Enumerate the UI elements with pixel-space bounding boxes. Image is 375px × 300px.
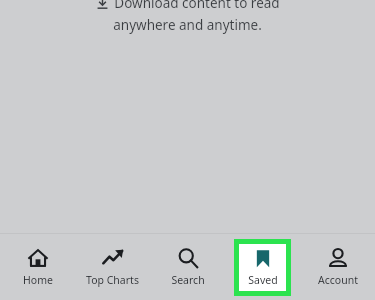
staticText: Account (318, 273, 358, 287)
staticText: Download content to read (114, 0, 280, 12)
staticText: Saved (248, 273, 278, 287)
staticText: anywhere and anytime. (113, 16, 262, 34)
other: Download (96, 0, 109, 10)
button[interactable]: Saved (239, 244, 286, 291)
staticText: Search (171, 273, 205, 287)
button[interactable]: Top Charts (75, 234, 150, 300)
staticText: Home (23, 273, 53, 287)
button[interactable]: Home (0, 234, 75, 300)
button[interactable]: Account (300, 234, 375, 300)
button[interactable]: Search (150, 234, 225, 300)
staticText: Top Charts (86, 273, 139, 287)
